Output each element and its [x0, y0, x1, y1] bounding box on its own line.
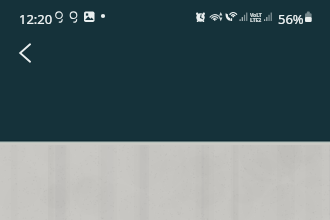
button[interactable]: Back — [8, 35, 44, 71]
staticText: LTE2 — [250, 16, 262, 23]
staticText: 12:20 — [19, 10, 53, 28]
staticText: VoLT — [250, 11, 262, 18]
staticText: 56% — [278, 10, 304, 28]
